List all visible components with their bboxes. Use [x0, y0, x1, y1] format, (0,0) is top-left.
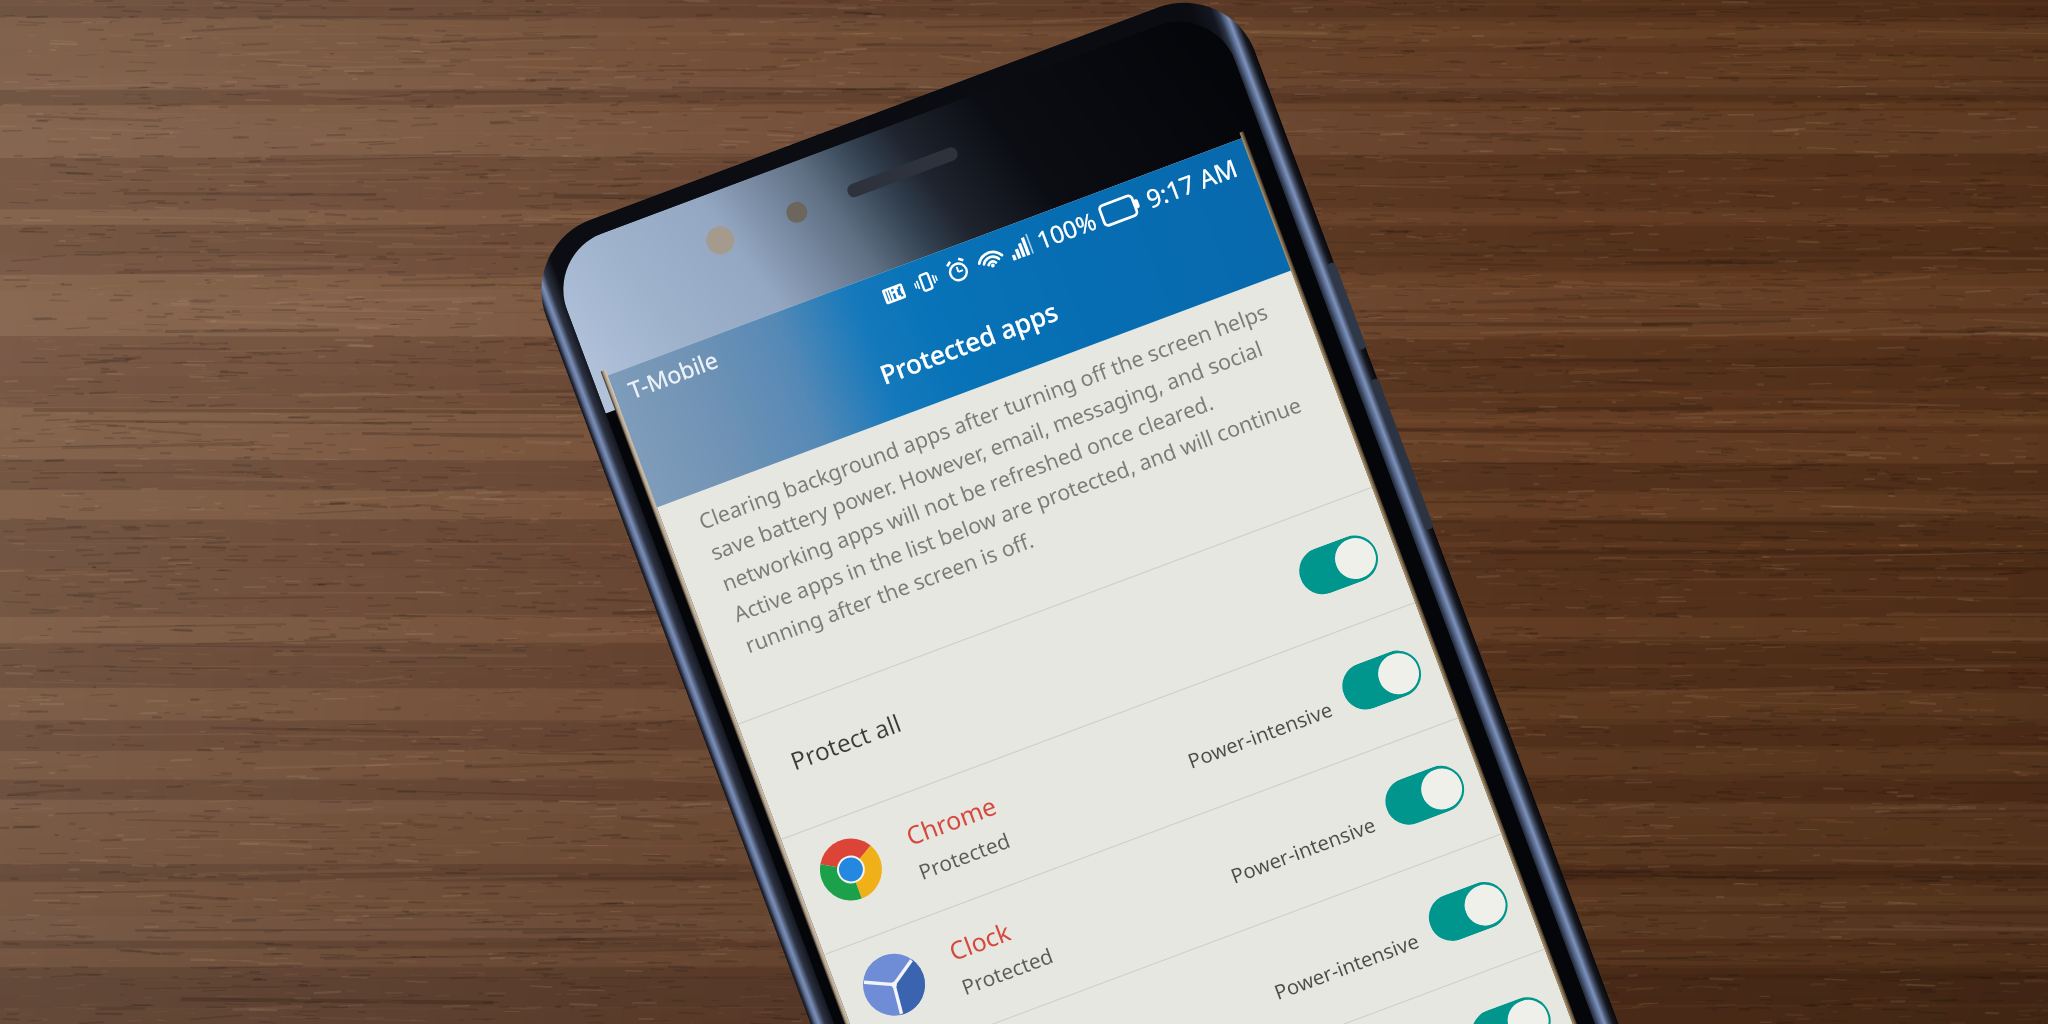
button[interactable]: Clock: [824, 717, 1501, 1024]
staticText: Power-intensive: [1270, 926, 1423, 1006]
button[interactable]: Contacts: [910, 948, 1588, 1024]
button[interactable]: Protection switch, on: [1422, 875, 1514, 948]
staticText: Power-intensive: [1227, 810, 1380, 890]
staticText: Clearing background apps after turning o…: [695, 289, 1337, 660]
staticText: Protected: [914, 826, 1015, 887]
staticText: Protected apps: [875, 293, 1063, 392]
staticText: Protected: [958, 941, 1058, 1002]
staticText: 9:17 AM: [1141, 150, 1242, 215]
button[interactable]: Protection switch, on: [1465, 990, 1557, 1024]
staticText: T-Mobile: [624, 343, 722, 405]
button[interactable]: Protection switch, on: [1379, 759, 1471, 831]
button[interactable]: Chrome: [781, 602, 1458, 954]
staticText: Calendar: [988, 1015, 1099, 1024]
button[interactable]: Protection switch, on: [1292, 529, 1385, 601]
staticText: Protect all: [786, 706, 906, 777]
button[interactable]: Calendar: [867, 833, 1544, 1024]
button[interactable]: Protection switch, on: [1335, 644, 1428, 716]
staticText: Chrome: [901, 788, 1001, 853]
staticText: Power-intensive: [1184, 695, 1337, 774]
staticText: 100%: [1032, 204, 1101, 256]
button[interactable]: Protect all: [738, 487, 1415, 839]
staticText: Clock: [944, 914, 1015, 968]
